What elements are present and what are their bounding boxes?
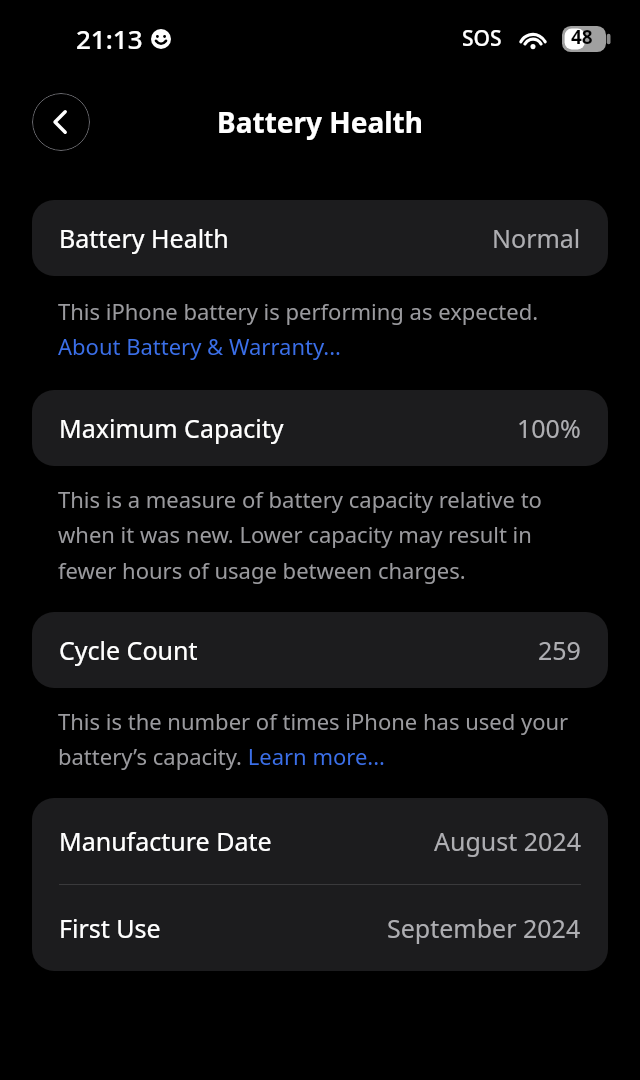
staticText: This iPhone battery is performing as exp… (58, 296, 582, 362)
staticText: Maximum Capacity (59, 411, 284, 445)
button[interactable]: Cycle Count (32, 612, 608, 688)
staticText: Cycle Count (59, 633, 198, 667)
staticText: 100% (517, 411, 581, 445)
button[interactable]: Maximum Capacity (32, 390, 608, 466)
staticText: SOS (462, 24, 502, 53)
staticText: September 2024 (387, 911, 581, 945)
staticText: First Use (59, 911, 161, 945)
button[interactable]: First Use (32, 885, 608, 971)
staticText: 259 (538, 633, 581, 667)
staticText: This is the number of times iPhone has u… (58, 706, 582, 772)
button[interactable]: Back (32, 93, 90, 151)
button[interactable]: Manufacture Date (32, 798, 608, 884)
staticText: 21:13 (76, 21, 143, 56)
staticText: Normal (492, 221, 581, 255)
button[interactable]: Battery Health (32, 200, 608, 276)
staticText: Manufacture Date (59, 824, 272, 858)
staticText: Battery Health (59, 221, 229, 255)
staticText: August 2024 (434, 824, 581, 858)
staticText: This is a measure of battery capacity re… (58, 484, 582, 586)
staticText: 48 (571, 24, 593, 50)
staticText: Battery Health (217, 103, 423, 141)
